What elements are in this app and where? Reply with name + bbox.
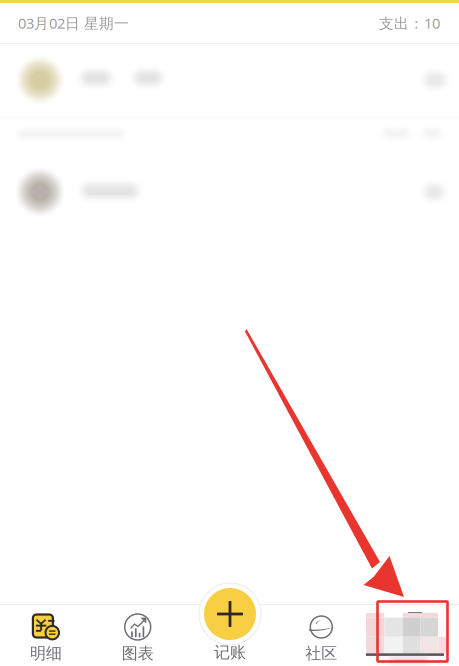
button[interactable]: [0, 44, 459, 117]
button[interactable]: 明细: [0, 604, 92, 666]
button[interactable]: 社区: [275, 604, 367, 666]
staticText: 图表: [122, 644, 154, 663]
button[interactable]: 我的: [367, 604, 459, 666]
staticText: 记账: [214, 643, 246, 662]
staticText: 支出：10: [379, 13, 440, 33]
staticText: 明细: [30, 644, 62, 663]
button[interactable]: 图表: [92, 604, 184, 666]
button[interactable]: [0, 162, 459, 229]
staticText: 社区: [305, 644, 337, 663]
button[interactable]: 记账: [184, 604, 275, 666]
button[interactable]: 记账: [199, 583, 261, 645]
staticText: 03月02日 星期一: [18, 13, 129, 33]
